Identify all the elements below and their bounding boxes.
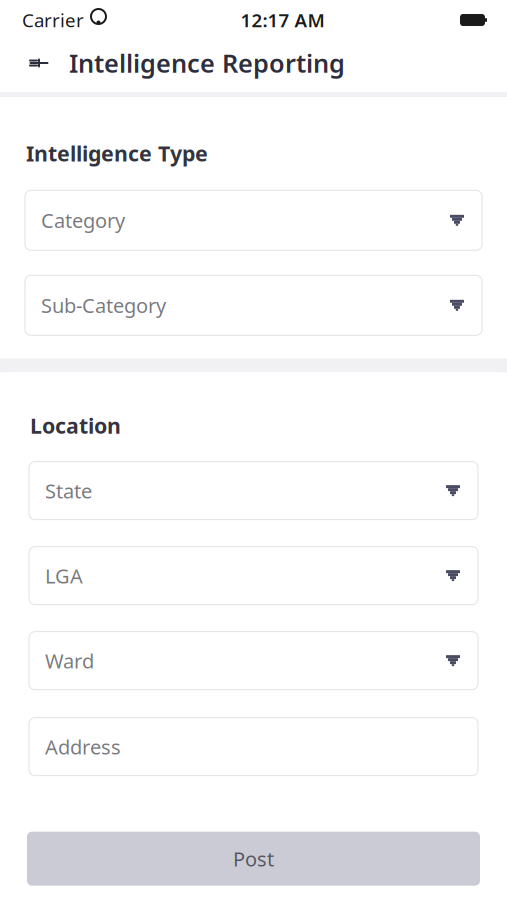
staticText: 12:17 AM bbox=[240, 8, 324, 32]
button[interactable]: Back bbox=[18, 43, 60, 83]
staticText: Category bbox=[41, 207, 125, 234]
button[interactable]: Sub-Category bbox=[25, 275, 482, 335]
button[interactable]: LGA bbox=[29, 547, 478, 605]
button[interactable]: Ward bbox=[29, 632, 478, 690]
staticText: Post bbox=[233, 845, 274, 872]
staticText: Intelligence Type bbox=[26, 139, 208, 167]
button[interactable]: Address bbox=[29, 718, 478, 776]
staticText: Ward bbox=[45, 647, 94, 674]
staticText: State bbox=[45, 477, 92, 504]
staticText: Carrier bbox=[22, 8, 84, 32]
staticText: Sub-Category bbox=[41, 292, 166, 319]
staticText: LGA bbox=[45, 562, 83, 589]
staticText: Address bbox=[45, 733, 121, 760]
button[interactable]: State bbox=[29, 462, 478, 520]
button[interactable]: Category bbox=[25, 190, 482, 250]
staticText: Intelligence Reporting bbox=[69, 46, 345, 80]
button[interactable]: Post bbox=[27, 832, 480, 886]
staticText: Location bbox=[30, 411, 121, 440]
